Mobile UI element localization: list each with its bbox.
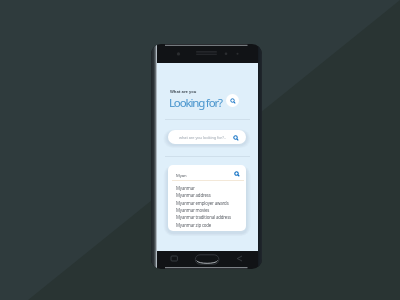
staticText: Myan — [176, 173, 187, 179]
button[interactable]: Myanmar employer awards — [168, 199, 246, 206]
button[interactable]: Myanmar address — [168, 191, 246, 198]
button[interactable]: what are you looking for?.. — [168, 130, 246, 144]
button[interactable]: Search — [226, 94, 239, 107]
staticText: What are you — [170, 89, 197, 94]
staticText: Myanmar — [176, 185, 195, 191]
button[interactable]: Myanmar — [168, 184, 246, 191]
staticText: Looking for? — [169, 95, 222, 111]
button[interactable]: Myanmar zip code — [168, 221, 246, 228]
staticText: Myanmar employer awards — [176, 200, 229, 206]
staticText: Myanmar address — [176, 192, 211, 198]
button[interactable]: Myanmar traditional address — [168, 213, 246, 220]
button[interactable]: Myanmar movies — [168, 206, 246, 213]
staticText: Myanmar zip code — [176, 222, 212, 228]
staticText: what are you looking for?.. — [179, 135, 226, 140]
staticText: Myanmar traditional address — [176, 214, 232, 220]
staticText: Myanmar movies — [176, 207, 210, 213]
